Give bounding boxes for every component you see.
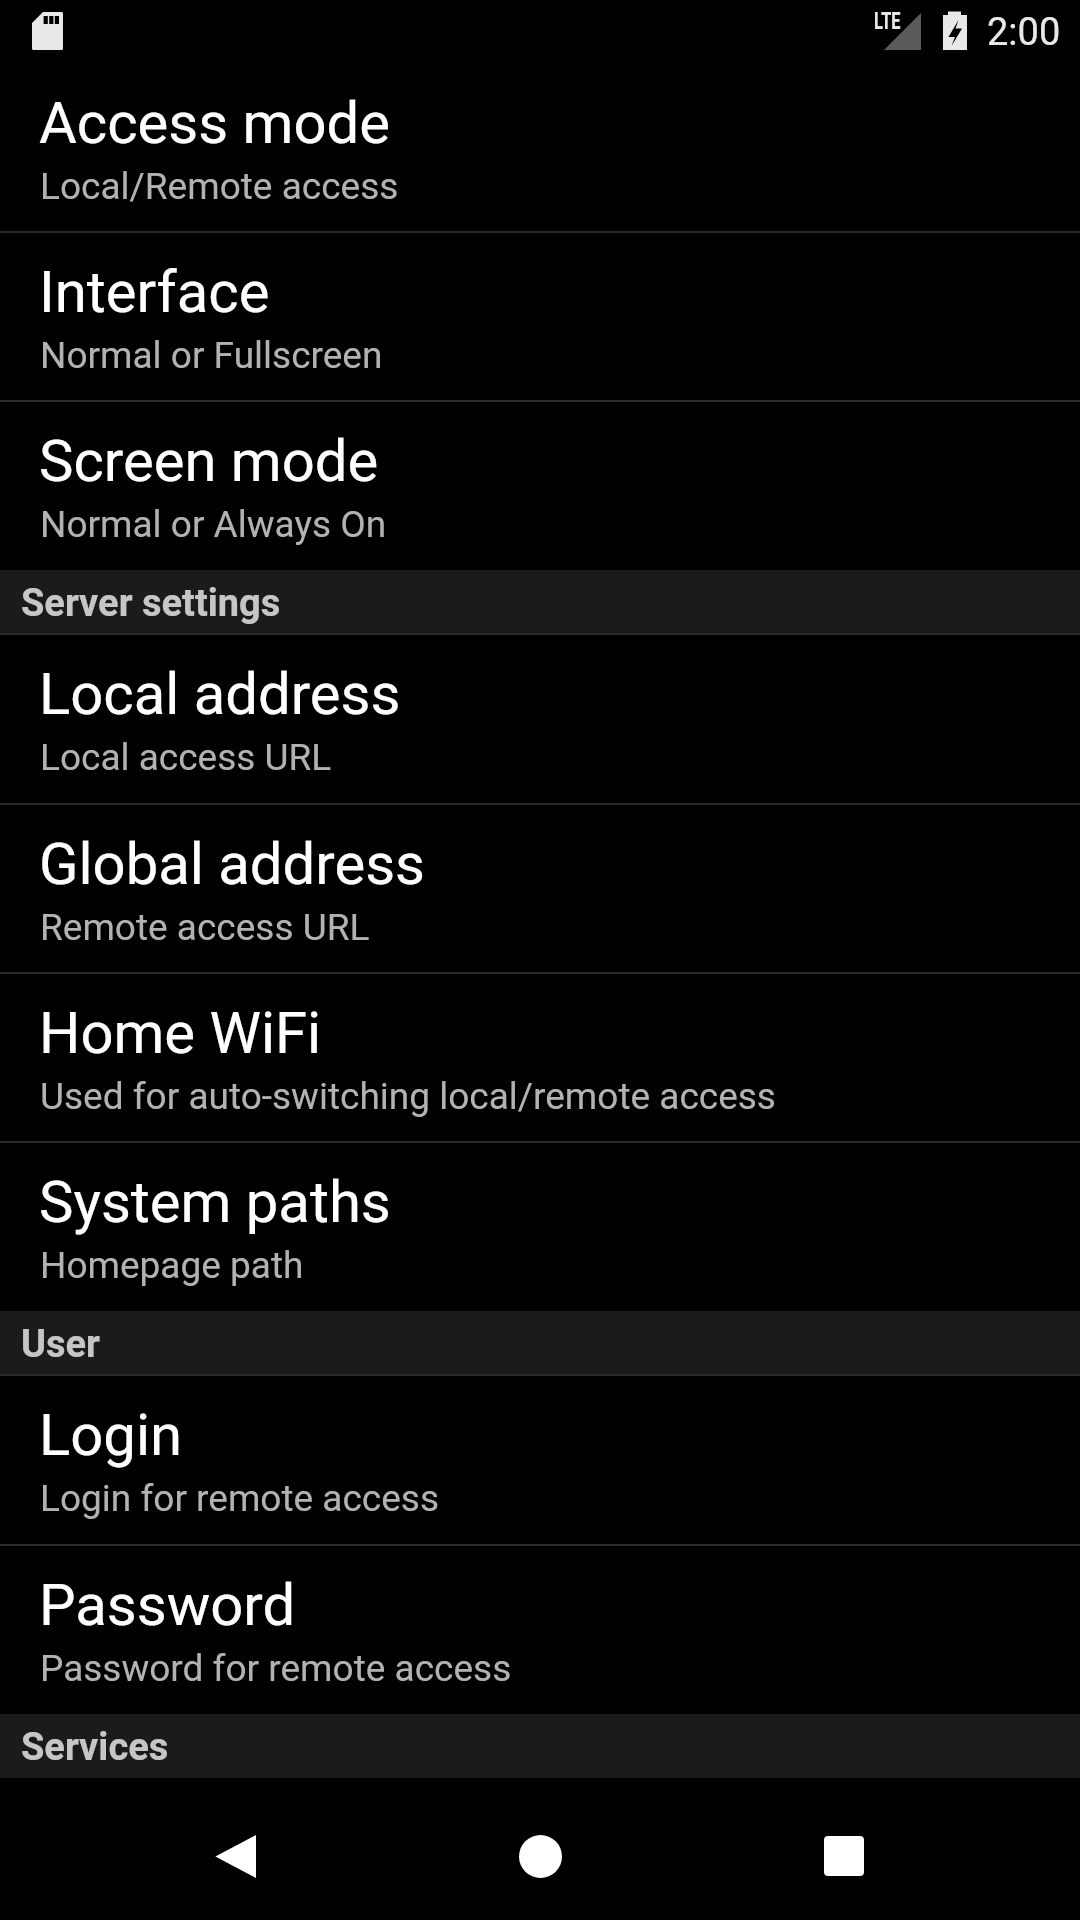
staticText: 2:00: [987, 10, 1061, 55]
staticText: Login: [39, 1401, 183, 1469]
staticText: Login for remote access: [40, 1477, 440, 1520]
staticText: Used for auto-switching local/remote acc…: [40, 1075, 776, 1118]
staticText: Local address: [39, 660, 401, 728]
staticText: System paths: [39, 1168, 391, 1236]
staticText: Remote access URL: [40, 906, 370, 949]
button[interactable]: Screen mode: [0, 402, 1080, 570]
button[interactable]: Access mode: [0, 64, 1080, 231]
staticText: Local/Remote access: [40, 165, 399, 208]
staticText: Interface: [39, 258, 270, 326]
staticText: Local access URL: [40, 736, 332, 779]
button[interactable]: Back: [190, 1810, 282, 1902]
staticText: Password: [39, 1571, 296, 1639]
staticText: Screen mode: [39, 427, 379, 495]
staticText: Access mode: [39, 89, 390, 157]
staticText: Services: [21, 1725, 169, 1770]
button[interactable]: Local address: [0, 635, 1080, 803]
staticText: Normal or Always On: [40, 503, 387, 546]
button[interactable]: System paths: [0, 1143, 1080, 1311]
button[interactable]: Recents: [798, 1810, 890, 1902]
staticText: Server settings: [21, 581, 281, 626]
button[interactable]: Home: [494, 1810, 586, 1902]
staticText: User: [21, 1322, 100, 1367]
button[interactable]: Interface: [0, 233, 1080, 400]
staticText: LTE: [874, 7, 900, 35]
staticText: Home WiFi: [39, 999, 322, 1067]
button[interactable]: Global address: [0, 805, 1080, 972]
button[interactable]: Login: [0, 1376, 1080, 1544]
staticText: Homepage path: [40, 1244, 304, 1287]
button[interactable]: Home WiFi: [0, 974, 1080, 1141]
staticText: Normal or Fullscreen: [40, 334, 383, 377]
staticText: Password for remote access: [40, 1647, 512, 1690]
staticText: Global address: [39, 830, 426, 898]
button[interactable]: Password: [0, 1546, 1080, 1714]
